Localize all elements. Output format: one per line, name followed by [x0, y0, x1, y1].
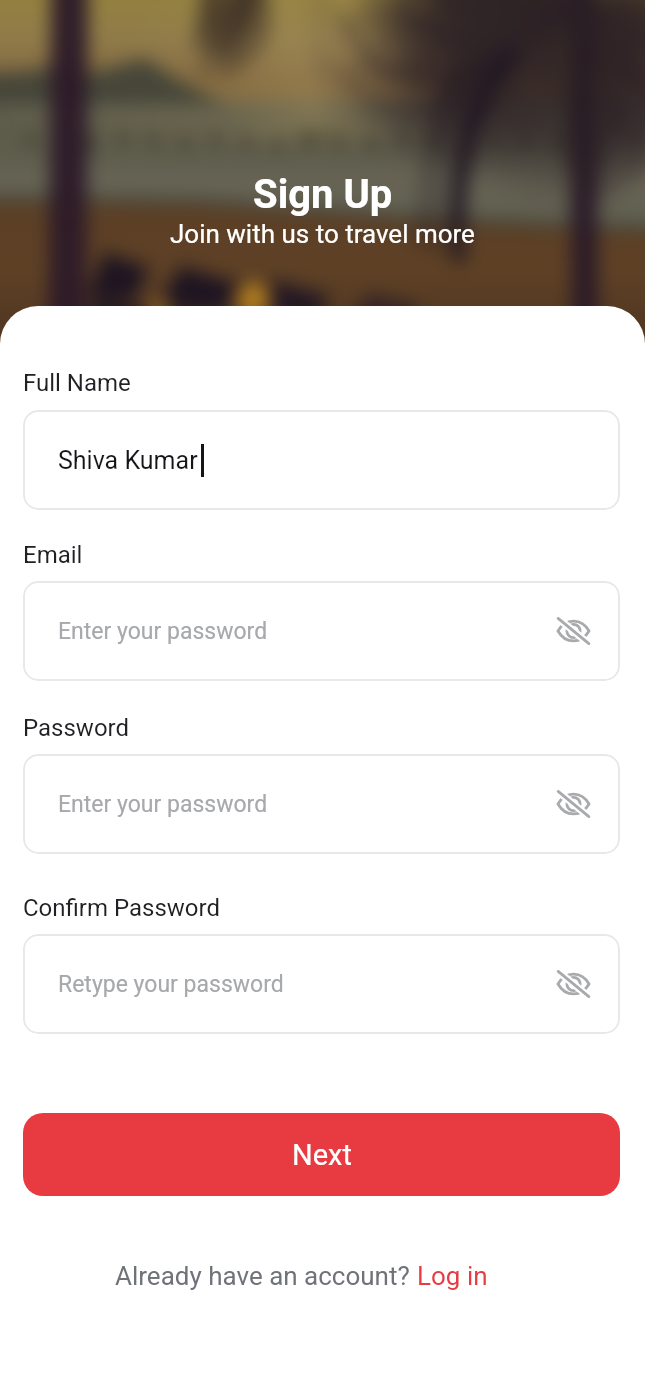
button[interactable]: Shiva Kumar [23, 410, 620, 510]
staticText: Log in [417, 1261, 488, 1291]
staticText: Full Name [23, 369, 131, 397]
staticText: Confirm Password [23, 894, 221, 922]
staticText: Retype your password [58, 971, 284, 998]
button[interactable]: Retype your password [23, 934, 620, 1034]
button[interactable]: Log in [417, 1261, 488, 1291]
staticText: Next [292, 1138, 352, 1172]
staticText: Email [23, 541, 83, 569]
staticText: Enter your password [58, 791, 268, 818]
button[interactable]: Toggle password visibility [556, 787, 590, 821]
staticText: Join with us to travel more [170, 219, 475, 249]
button[interactable]: Enter your password [23, 581, 620, 681]
button[interactable]: Toggle password visibility [556, 967, 590, 1001]
staticText: Enter your password [58, 618, 268, 645]
staticText: Already have an account? [115, 1261, 417, 1291]
staticText: Sign Up [253, 171, 393, 218]
button[interactable]: Enter your password [23, 754, 620, 854]
button[interactable]: Next [23, 1113, 620, 1196]
staticText: Shiva Kumar [58, 446, 198, 475]
staticText: Password [23, 714, 130, 742]
button[interactable]: Toggle password visibility [556, 614, 590, 648]
